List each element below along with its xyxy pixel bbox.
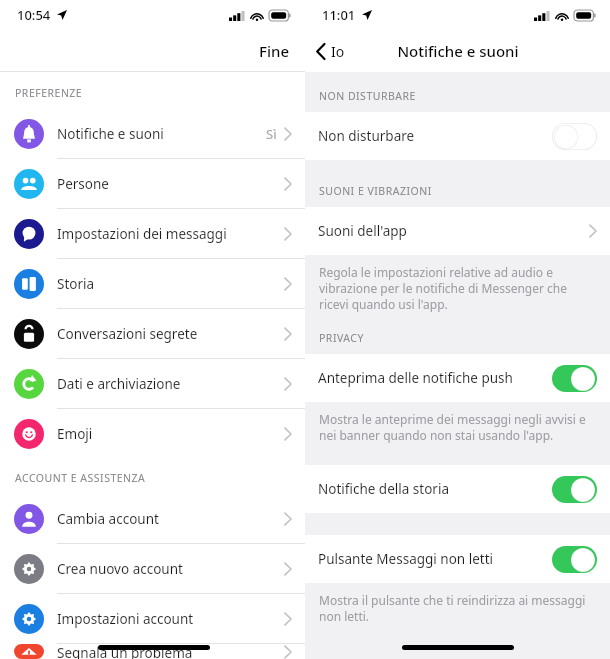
staticText: PRIVACY [319,331,364,345]
button[interactable]: Disattivo [552,123,597,150]
staticText: PREFERENZE [15,86,83,100]
button[interactable]: Conversazioni segrete [0,309,305,359]
staticText: Emoji [57,425,93,443]
staticText: Anteprima delle notifiche push [318,369,513,387]
button[interactable]: Dati e archiviazione [0,359,305,409]
staticText: Impostazioni dei messaggi [57,225,227,243]
staticText: Conversazioni segrete [57,325,198,343]
staticText: Non disturbare [318,127,415,145]
button[interactable]: Fine [243,33,305,69]
staticText: Sì [266,125,277,143]
staticText: SUONI E VIBRAZIONI [319,184,432,198]
button[interactable]: Non disturbare [305,112,610,160]
staticText: Impostazioni account [57,610,194,628]
button[interactable]: Notifiche della storia [305,465,610,513]
button[interactable]: Attivo [552,365,597,392]
button[interactable]: Segnala un problema [0,644,305,659]
button[interactable]: Suoni dell'app [305,207,610,255]
staticText: Suoni dell'app [318,222,407,240]
staticText: Fine [259,41,289,61]
button[interactable]: Anteprima delle notifiche push [305,354,610,402]
button[interactable]: Cambia account [0,494,305,544]
button[interactable]: Pulsante Messaggi non letti [305,535,610,583]
staticText: Pulsante Messaggi non letti [318,550,494,568]
staticText: Mostra le anteprime dei messaggi negli a… [319,411,592,443]
button[interactable]: Crea nuovo account [0,544,305,594]
button[interactable]: Impostazioni account [0,594,305,644]
staticText: Notifiche della storia [318,480,449,498]
staticText: Storia [57,275,95,293]
button[interactable]: Attivo [552,546,597,573]
staticText: Notifiche e suoni [57,125,164,143]
staticText: Dati e archiviazione [57,375,181,393]
staticText: Persone [57,175,109,193]
button[interactable]: Impostazioni dei messaggi [0,209,305,259]
button[interactable]: Storia [0,259,305,309]
staticText: Segnala un problema [57,644,193,659]
button[interactable]: Notifiche e suoni [0,109,305,159]
staticText: Mostra il pulsante che ti reindirizza ai… [319,592,592,624]
staticText: ACCOUNT E ASSISTENZA [15,471,146,485]
staticText: NON DISTURBARE [319,89,416,103]
staticText: Notifiche e suoni [397,41,519,61]
staticText: 10:54 [17,6,51,24]
staticText: Cambia account [57,510,159,528]
button[interactable]: Emoji [0,409,305,458]
staticText: Regola le impostazioni relative ad audio… [319,264,592,312]
button[interactable]: Indietro [305,36,357,67]
button[interactable]: Attivo [552,476,597,503]
staticText: Io [331,42,345,61]
button[interactable]: Persone [0,159,305,209]
staticText: 11:01 [322,6,356,24]
staticText: Crea nuovo account [57,560,183,578]
